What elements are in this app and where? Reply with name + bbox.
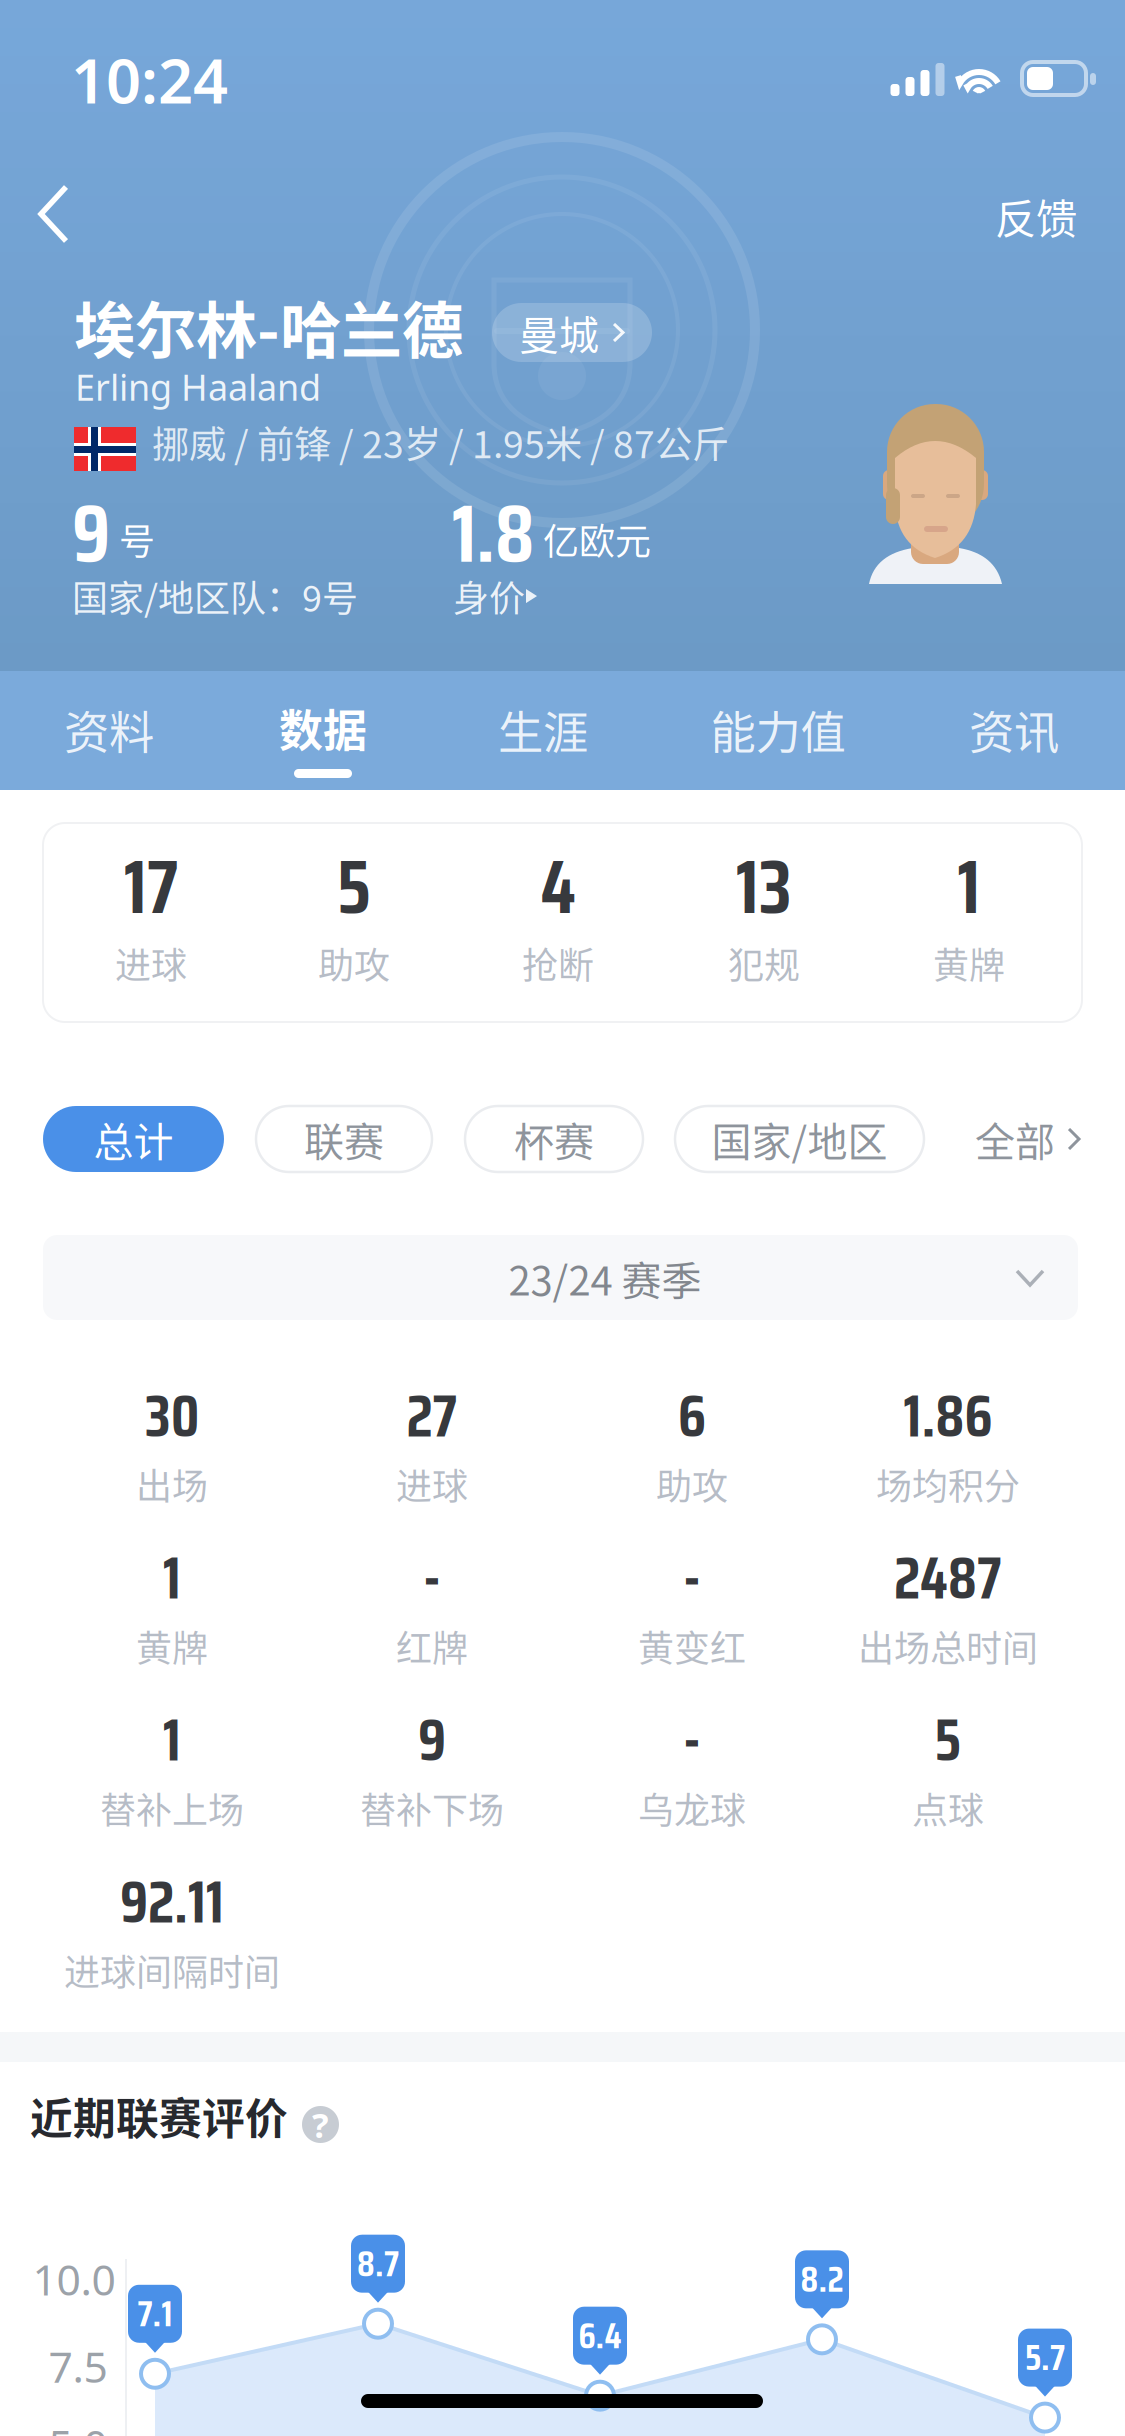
staticText: 5.0	[48, 2416, 107, 2436]
staticText: 9	[418, 1694, 446, 1786]
staticText: 红牌	[396, 1620, 468, 1672]
staticText: 反馈	[995, 186, 1077, 246]
staticText: 进球	[396, 1458, 468, 1510]
staticText: 进球间隔时间	[64, 1944, 280, 1996]
staticText: 总计	[93, 1110, 173, 1168]
staticText: 9	[72, 471, 110, 597]
staticText: 5	[934, 1694, 961, 1786]
staticText: 5.7	[1025, 2329, 1065, 2386]
staticText: 资料	[64, 697, 154, 763]
staticText: 8.7	[357, 2235, 399, 2292]
staticText: 5	[337, 828, 371, 946]
staticText: 国家/地区	[711, 1110, 887, 1168]
staticText: 1	[163, 1532, 181, 1624]
button[interactable]: 联赛	[256, 1106, 432, 1172]
staticText: 乌龙球	[638, 1782, 746, 1834]
button[interactable]: 生涯	[438, 671, 648, 790]
button[interactable]: 能力值	[673, 671, 883, 790]
staticText: 30	[145, 1370, 199, 1462]
staticText: 替补上场	[100, 1782, 244, 1834]
staticText: 能力值	[710, 697, 845, 763]
staticText: 助攻	[318, 937, 390, 989]
button[interactable]: 23/24 赛季	[43, 1235, 1078, 1320]
button[interactable]: 国家/地区	[675, 1106, 924, 1172]
staticText: 号	[119, 513, 155, 565]
staticText: 近期联赛评价	[30, 2085, 288, 2147]
staticText: 黄牌	[933, 937, 1005, 989]
staticText: 助攻	[656, 1458, 728, 1510]
button[interactable]: 身价	[453, 570, 539, 622]
button[interactable]: 全部	[975, 1106, 1081, 1172]
staticText: 生涯	[498, 697, 588, 763]
staticText: 进球	[115, 937, 187, 989]
staticText: 8.2	[800, 2251, 843, 2308]
staticText: 黄牌	[136, 1620, 208, 1672]
staticText: 犯规	[728, 937, 800, 989]
staticText: 联赛	[304, 1110, 384, 1168]
staticText: 资讯	[969, 697, 1059, 763]
staticText: 点球	[912, 1782, 984, 1834]
staticText: 数据	[279, 696, 367, 760]
staticText: 杯赛	[514, 1110, 594, 1168]
button[interactable]: 曼城	[492, 303, 652, 362]
button[interactable]: Back	[0, 164, 109, 264]
staticText: -	[683, 1532, 701, 1624]
button[interactable]: 资讯	[909, 671, 1119, 790]
staticText: 亿欧元	[543, 513, 651, 565]
staticText: -	[683, 1694, 701, 1786]
staticText: 13	[736, 828, 792, 946]
staticText: 17	[124, 828, 178, 946]
button[interactable]: 数据	[218, 671, 428, 790]
staticText: -	[423, 1532, 441, 1624]
staticText: 身价	[453, 570, 525, 622]
staticText: 国家/地区队：9号	[72, 570, 358, 622]
staticText: 1.86	[903, 1370, 992, 1462]
button[interactable]: 杯赛	[465, 1106, 643, 1172]
staticText: 2487	[894, 1532, 1002, 1624]
staticText: 抢断	[522, 937, 594, 989]
staticText: 1	[957, 828, 980, 946]
staticText: 6	[678, 1370, 706, 1462]
staticText: 1.8	[452, 471, 534, 597]
staticText: 23/24 赛季	[508, 1249, 701, 1307]
staticText: 7.1	[137, 2285, 172, 2342]
button[interactable]: 总计	[43, 1106, 224, 1172]
staticText: 10.0	[32, 2251, 115, 2307]
staticText: ?	[312, 2101, 329, 2147]
staticText: 6.4	[578, 2307, 621, 2364]
staticText: 全部	[975, 1110, 1055, 1168]
button[interactable]: 反馈	[917, 166, 1077, 266]
staticText: 1	[163, 1694, 181, 1786]
staticText: 替补下场	[360, 1782, 504, 1834]
staticText: 10:24	[71, 39, 228, 120]
staticText: 挪威 / 前锋 / 23岁 / 1.95米 / 87公斤	[152, 415, 729, 469]
staticText: 黄变红	[638, 1620, 746, 1672]
staticText: 场均积分	[876, 1458, 1020, 1510]
staticText: 27	[406, 1370, 457, 1462]
staticText: 出场总时间	[858, 1620, 1038, 1672]
button[interactable]: 资料	[4, 671, 214, 790]
staticText: 曼城	[519, 303, 599, 361]
staticText: 7.5	[48, 2338, 107, 2395]
staticText: 埃尔林-哈兰德	[74, 282, 463, 371]
staticText: Erling Haaland	[75, 363, 321, 411]
staticText: 92.11	[120, 1856, 224, 1948]
staticText: 4	[540, 828, 575, 946]
staticText: 出场	[136, 1458, 208, 1510]
